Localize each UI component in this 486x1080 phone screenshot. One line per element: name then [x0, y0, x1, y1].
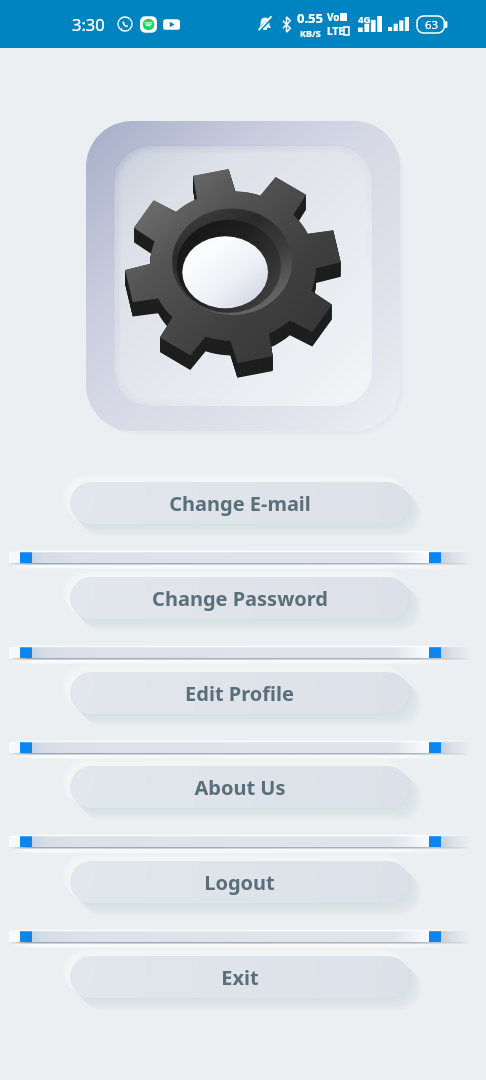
staticText: Exit [221, 964, 259, 991]
staticText: KB/S [300, 27, 321, 39]
staticText: About Us [194, 774, 286, 801]
staticText: LTE [327, 24, 344, 38]
staticText: 0.55 [297, 9, 323, 27]
button[interactable]: Exit [70, 956, 409, 998]
staticText: Change Password [152, 585, 328, 612]
button[interactable]: Change E-mail [70, 482, 409, 524]
staticText: 4G [358, 13, 371, 26]
staticText: Change E-mail [169, 490, 311, 517]
staticText: Vo [327, 10, 340, 24]
button[interactable]: Change Password [70, 577, 409, 619]
button[interactable]: Edit Profile [70, 672, 409, 714]
staticText: Edit Profile [185, 680, 294, 707]
button[interactable]: Logout [70, 861, 409, 903]
staticText: 63 [425, 17, 439, 33]
staticText: 3:30 [72, 13, 105, 35]
staticText: Logout [204, 869, 275, 896]
button[interactable]: About Us [70, 766, 409, 808]
